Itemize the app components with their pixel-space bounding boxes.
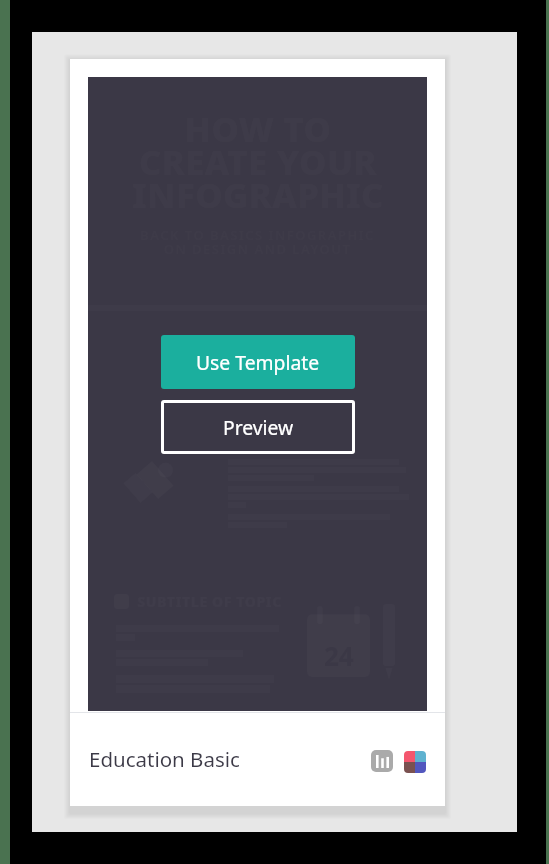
button[interactable]: Chart [371, 750, 393, 772]
staticText: Education Basic [89, 745, 240, 773]
button[interactable]: Palette [404, 751, 426, 773]
staticText: Preview [223, 414, 294, 440]
staticText: Use Template [196, 349, 320, 375]
button[interactable]: Use Template [161, 335, 355, 389]
button[interactable]: Preview [161, 400, 355, 454]
